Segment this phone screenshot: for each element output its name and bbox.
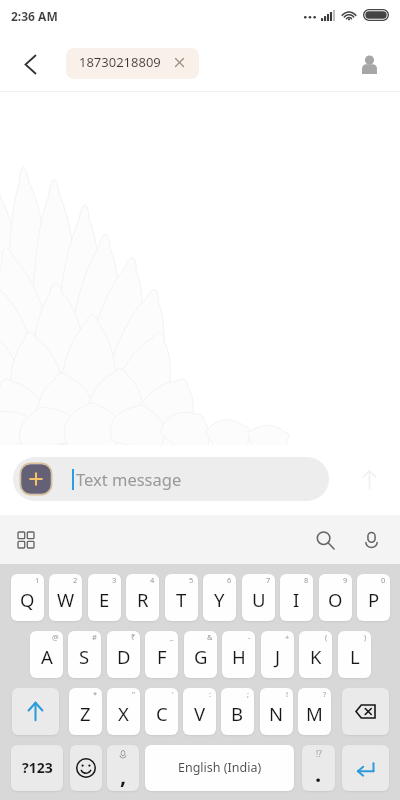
staticText: ) bbox=[364, 632, 367, 642]
staticText: V bbox=[194, 701, 206, 726]
staticText: !? bbox=[316, 748, 322, 759]
button[interactable]: Shift bbox=[12, 688, 59, 735]
staticText: E bbox=[99, 587, 110, 612]
staticText: 0 bbox=[381, 575, 386, 585]
staticText: R bbox=[137, 587, 149, 612]
staticText: U bbox=[252, 587, 266, 612]
staticText: 9 bbox=[343, 575, 348, 585]
staticText: - bbox=[248, 632, 251, 642]
staticText: # bbox=[92, 632, 97, 642]
button[interactable]: ? bbox=[298, 688, 331, 735]
button[interactable]: Search bbox=[306, 521, 344, 559]
button[interactable]: : bbox=[183, 688, 216, 735]
button[interactable]: * bbox=[69, 688, 102, 735]
button[interactable]: ( bbox=[299, 631, 332, 678]
button[interactable]: ₹ bbox=[107, 631, 140, 678]
button[interactable]: Period bbox=[302, 745, 335, 791]
staticText: Q bbox=[20, 587, 35, 612]
staticText: 1 bbox=[35, 575, 40, 585]
staticText: , bbox=[120, 760, 127, 790]
button[interactable]: 0 bbox=[357, 574, 390, 621]
button[interactable]: 9 bbox=[319, 574, 352, 621]
staticText: ? bbox=[323, 689, 327, 699]
staticText: 7 bbox=[266, 575, 271, 585]
staticText: 2:36 AM bbox=[11, 8, 58, 24]
staticText: 8 bbox=[304, 575, 309, 585]
button[interactable]: - bbox=[222, 631, 255, 678]
staticText: 18730218809 bbox=[79, 53, 161, 71]
staticText: 6 bbox=[227, 575, 232, 585]
staticText: X bbox=[118, 701, 129, 726]
button[interactable]: & bbox=[184, 631, 217, 678]
staticText: N bbox=[269, 701, 284, 726]
button[interactable]: 2 bbox=[49, 574, 82, 621]
staticText: F bbox=[157, 644, 167, 669]
staticText: A bbox=[41, 644, 53, 669]
button[interactable]: Back bbox=[10, 44, 50, 84]
button[interactable]: 18730218809 bbox=[66, 48, 199, 79]
button[interactable]: ; bbox=[221, 688, 254, 735]
staticText: Z bbox=[80, 701, 91, 726]
staticText: 3 bbox=[112, 575, 117, 585]
staticText: 2 bbox=[73, 575, 78, 585]
button[interactable]: Voice input bbox=[352, 521, 390, 559]
staticText: W bbox=[57, 587, 75, 612]
staticText: Y bbox=[214, 587, 225, 612]
staticText: H bbox=[232, 644, 246, 669]
button[interactable]: + bbox=[261, 631, 294, 678]
staticText: C bbox=[156, 701, 168, 726]
button[interactable]: _ bbox=[145, 631, 178, 678]
staticText: T bbox=[176, 587, 187, 612]
button[interactable]: ! bbox=[260, 688, 293, 735]
button[interactable]: @ bbox=[30, 631, 63, 678]
button[interactable]: Keyboard menu bbox=[7, 521, 45, 559]
staticText: & bbox=[207, 632, 213, 642]
staticText: " bbox=[132, 689, 136, 699]
staticText: ( bbox=[325, 632, 328, 642]
staticText: 5 bbox=[189, 575, 194, 585]
button[interactable]: " bbox=[107, 688, 140, 735]
button[interactable]: 1 bbox=[11, 574, 44, 621]
staticText: K bbox=[310, 644, 322, 669]
staticText: English (India) bbox=[178, 759, 262, 776]
button[interactable]: 3 bbox=[88, 574, 121, 621]
button[interactable]: # bbox=[68, 631, 101, 678]
button[interactable]: English (India) bbox=[145, 745, 294, 791]
button[interactable]: 6 bbox=[203, 574, 236, 621]
button[interactable]: 5 bbox=[165, 574, 198, 621]
staticText: B bbox=[231, 701, 244, 726]
staticText: J bbox=[275, 644, 281, 669]
staticText: ; bbox=[247, 689, 250, 699]
button[interactable]: Add attachment bbox=[20, 463, 52, 495]
button[interactable]: ?123 bbox=[11, 745, 63, 791]
button[interactable]: Enter bbox=[342, 745, 389, 791]
button[interactable]: Add attachment bbox=[13, 457, 329, 501]
button[interactable]: Backspace bbox=[342, 688, 389, 735]
button[interactable]: Contact details bbox=[349, 44, 389, 84]
button[interactable]: ' bbox=[145, 688, 178, 735]
staticText: * bbox=[93, 689, 98, 699]
button[interactable]: 4 bbox=[126, 574, 159, 621]
staticText: @ bbox=[52, 632, 59, 642]
staticText: ! bbox=[286, 689, 289, 699]
staticText: _ bbox=[170, 632, 174, 642]
staticText: ₹ bbox=[131, 632, 136, 642]
staticText: L bbox=[350, 644, 360, 669]
staticText: M bbox=[306, 701, 323, 726]
staticText: ?123 bbox=[22, 758, 53, 777]
staticText: : bbox=[209, 689, 212, 699]
button[interactable]: 7 bbox=[242, 574, 275, 621]
button[interactable]: ) bbox=[338, 631, 371, 678]
staticText: + bbox=[285, 632, 290, 642]
staticText: P bbox=[368, 587, 380, 612]
staticText: O bbox=[328, 587, 343, 612]
button[interactable]: Emoji bbox=[70, 745, 102, 791]
staticText: I bbox=[293, 587, 300, 612]
button[interactable]: Comma, hold for voice input bbox=[107, 745, 139, 791]
button[interactable]: 8 bbox=[280, 574, 313, 621]
staticText: . bbox=[315, 758, 322, 788]
staticText: ' bbox=[172, 689, 174, 699]
staticText: Text message bbox=[76, 468, 182, 490]
staticText: 4 bbox=[150, 575, 155, 585]
